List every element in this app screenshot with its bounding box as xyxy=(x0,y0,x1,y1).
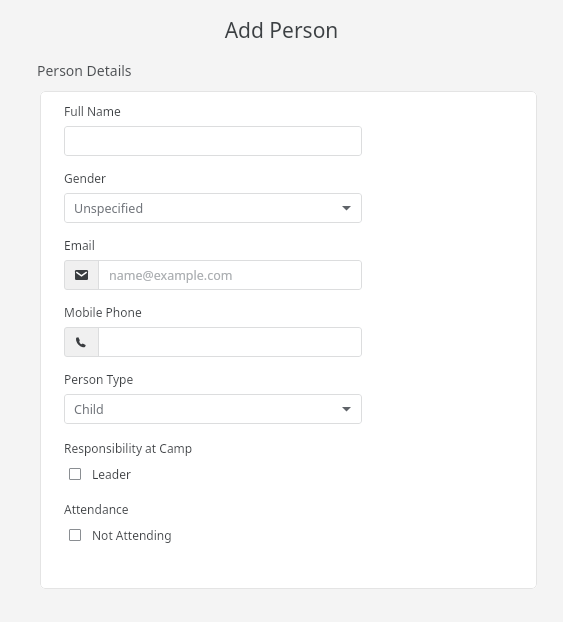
staticText: Attendance xyxy=(64,501,129,517)
staticText: Full Name xyxy=(64,103,121,119)
staticText: Email xyxy=(64,237,95,253)
staticText: Gender xyxy=(64,170,107,186)
staticText: name@example.com xyxy=(109,267,233,284)
staticText: Unspecified xyxy=(74,200,144,217)
staticText: Add Person xyxy=(0,16,563,45)
button[interactable]: Unspecified xyxy=(64,193,362,223)
button[interactable] xyxy=(64,126,362,156)
button[interactable]: Not Attending xyxy=(64,525,362,545)
button[interactable]: Leader xyxy=(64,464,362,484)
staticText: Person Details xyxy=(37,61,132,80)
staticText: Mobile Phone xyxy=(64,304,142,320)
staticText: Responsibility at Camp xyxy=(64,440,193,456)
staticText: Person Type xyxy=(64,371,134,387)
staticText: Not Attending xyxy=(92,527,172,543)
button[interactable]: Mobile phone number xyxy=(64,327,362,357)
button[interactable]: Email address xyxy=(64,260,362,290)
button[interactable]: Child xyxy=(64,394,362,424)
staticText: Leader xyxy=(92,466,131,482)
staticText: Child xyxy=(74,401,104,418)
